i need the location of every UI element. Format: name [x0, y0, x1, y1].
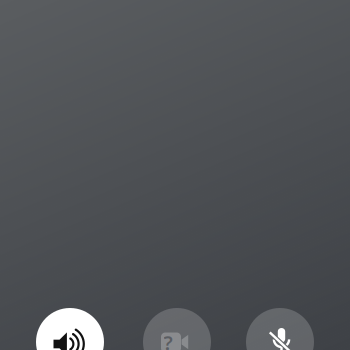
button[interactable]: Mute: [0, 0, 350, 350]
staticText: ?: [163, 329, 172, 350]
button[interactable]: Speaker: [0, 0, 350, 350]
button[interactable]: Camera: [0, 0, 350, 350]
